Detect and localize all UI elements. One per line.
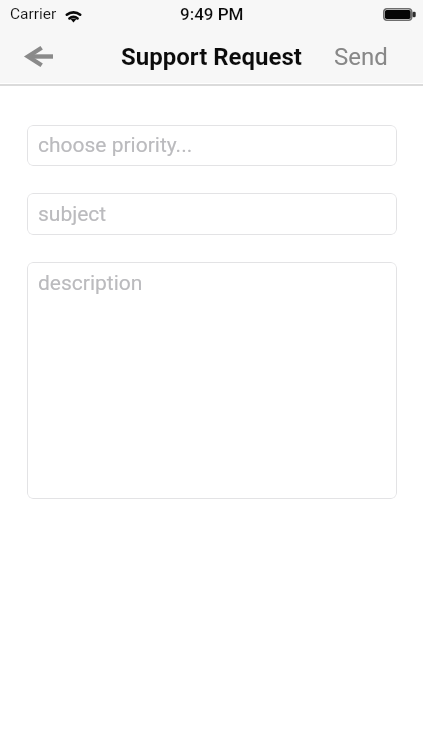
- staticText: subject: [38, 202, 107, 227]
- staticText: description: [38, 271, 143, 296]
- button[interactable]: subject: [27, 193, 397, 235]
- button[interactable]: Back: [13, 33, 65, 81]
- button[interactable]: Send: [334, 43, 388, 71]
- staticText: Send: [334, 43, 388, 71]
- staticText: Carrier: [10, 5, 57, 23]
- staticText: Support Request: [121, 43, 302, 71]
- staticText: choose priority...: [38, 133, 193, 158]
- button[interactable]: choose priority...: [27, 125, 397, 166]
- staticText: 9:49 PM: [180, 4, 244, 24]
- button[interactable]: description: [27, 262, 397, 499]
